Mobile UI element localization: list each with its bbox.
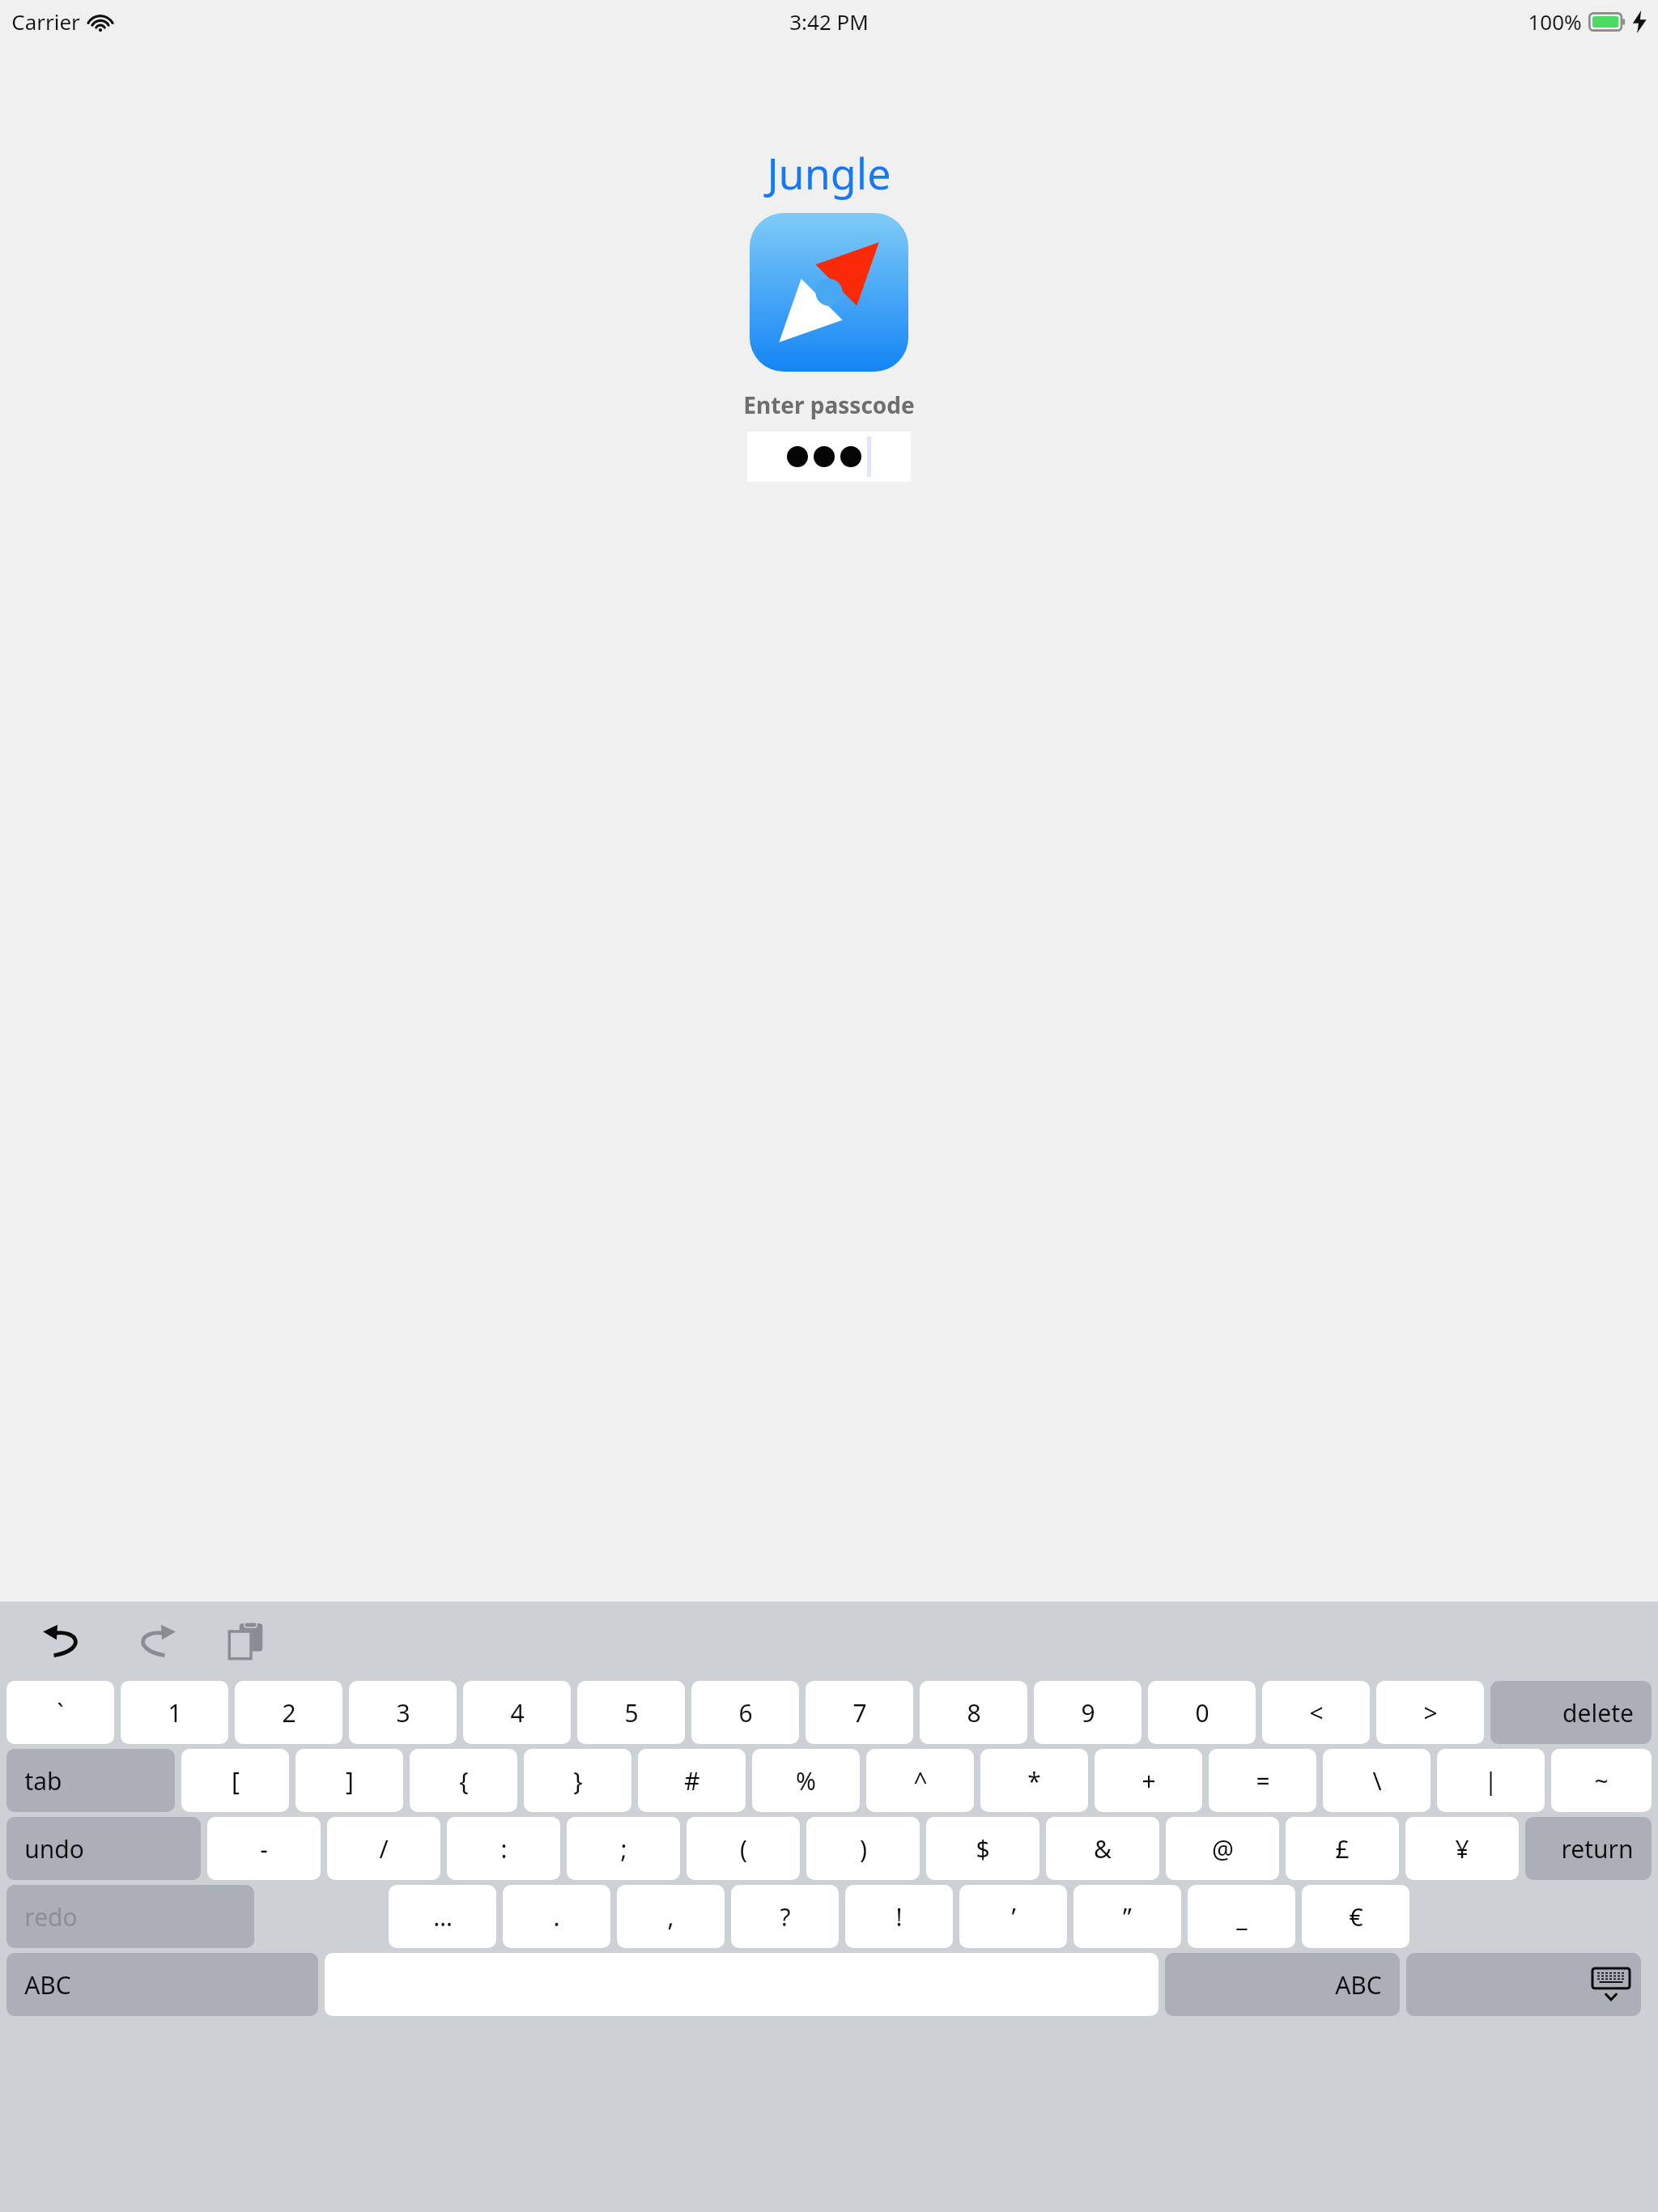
staticText: ^ bbox=[913, 1764, 928, 1797]
button[interactable]: 9 bbox=[1034, 1681, 1141, 1744]
staticText: ’ bbox=[1011, 1900, 1016, 1933]
button[interactable]: , bbox=[617, 1885, 725, 1948]
staticText: ~ bbox=[1594, 1764, 1609, 1797]
button[interactable]: ( bbox=[687, 1817, 800, 1880]
button[interactable]: - bbox=[207, 1817, 321, 1880]
button[interactable]: { bbox=[410, 1749, 517, 1812]
button[interactable]: * bbox=[980, 1749, 1088, 1812]
staticText: ¥ bbox=[1455, 1832, 1469, 1865]
button[interactable]: @ bbox=[1166, 1817, 1279, 1880]
button[interactable]: € bbox=[1302, 1885, 1409, 1948]
button[interactable]: ’ bbox=[959, 1885, 1067, 1948]
button[interactable]: ) bbox=[806, 1817, 920, 1880]
button[interactable]: ¥ bbox=[1405, 1817, 1519, 1880]
button[interactable]: ! bbox=[845, 1885, 953, 1948]
staticText: { bbox=[459, 1764, 469, 1797]
button[interactable]: ] bbox=[295, 1749, 403, 1812]
button[interactable]: 5 bbox=[577, 1681, 685, 1744]
staticText: 8 bbox=[967, 1696, 981, 1729]
other: Hide keyboard bbox=[1406, 1953, 1630, 2016]
button[interactable]: 6 bbox=[691, 1681, 799, 1744]
staticText: 100% bbox=[1528, 7, 1582, 36]
staticText: 4 bbox=[510, 1696, 525, 1729]
staticText: Enter passcode bbox=[743, 389, 915, 420]
button[interactable]: < bbox=[1262, 1681, 1370, 1744]
staticText: + bbox=[1141, 1764, 1156, 1797]
staticText: redo bbox=[24, 1900, 78, 1933]
staticText: return bbox=[1561, 1832, 1634, 1865]
staticText: ! bbox=[895, 1900, 903, 1933]
staticText: tab bbox=[24, 1764, 62, 1797]
button[interactable]: Jungle app icon bbox=[750, 213, 908, 372]
button[interactable]: [ bbox=[181, 1749, 289, 1812]
button[interactable]: delete bbox=[1490, 1681, 1652, 1744]
staticText: ( bbox=[740, 1832, 747, 1865]
button[interactable]: ABC bbox=[1165, 1953, 1400, 2016]
button[interactable]: ; bbox=[567, 1817, 680, 1880]
staticText: @ bbox=[1212, 1832, 1234, 1865]
button[interactable]: … bbox=[389, 1885, 496, 1948]
button[interactable]: / bbox=[327, 1817, 440, 1880]
staticText: # bbox=[684, 1764, 700, 1797]
staticText: 5 bbox=[624, 1696, 639, 1729]
staticText: 6 bbox=[738, 1696, 753, 1729]
button[interactable]: \ bbox=[1323, 1749, 1431, 1812]
button[interactable]: 3 bbox=[349, 1681, 457, 1744]
button[interactable]: redo bbox=[6, 1885, 254, 1948]
button[interactable]: } bbox=[524, 1749, 631, 1812]
button[interactable]: % bbox=[752, 1749, 860, 1812]
button[interactable]: # bbox=[638, 1749, 746, 1812]
button[interactable]: Hide keyboard bbox=[1406, 1953, 1641, 2016]
button[interactable]: undo bbox=[6, 1817, 201, 1880]
staticText: £ bbox=[1335, 1832, 1350, 1865]
staticText: ” bbox=[1123, 1900, 1132, 1933]
button[interactable]: _ bbox=[1188, 1885, 1295, 1948]
staticText: … bbox=[433, 1900, 453, 1933]
staticText: | bbox=[1484, 1764, 1498, 1797]
button[interactable]: ~ bbox=[1551, 1749, 1652, 1812]
staticText: . bbox=[553, 1900, 560, 1933]
button[interactable]: 2 bbox=[235, 1681, 342, 1744]
button[interactable]: ` bbox=[6, 1681, 114, 1744]
staticText: 1 bbox=[168, 1696, 182, 1729]
staticText: 0 bbox=[1195, 1696, 1209, 1729]
button[interactable]: > bbox=[1376, 1681, 1484, 1744]
staticText: ` bbox=[57, 1696, 64, 1729]
staticText: 7 bbox=[852, 1696, 867, 1729]
button[interactable]: ABC bbox=[6, 1953, 318, 2016]
staticText: : bbox=[500, 1832, 508, 1865]
button[interactable]: 8 bbox=[920, 1681, 1027, 1744]
button[interactable]: 7 bbox=[806, 1681, 913, 1744]
button[interactable]: | bbox=[1437, 1749, 1545, 1812]
staticText: < bbox=[1309, 1696, 1324, 1729]
button[interactable]: Redo bbox=[120, 1607, 188, 1675]
button[interactable]: return bbox=[1525, 1817, 1652, 1880]
staticText: [ bbox=[232, 1764, 240, 1797]
button[interactable]: 0 bbox=[1148, 1681, 1256, 1744]
button[interactable]: $ bbox=[926, 1817, 1039, 1880]
button[interactable]: . bbox=[503, 1885, 610, 1948]
button[interactable]: 4 bbox=[463, 1681, 571, 1744]
staticText: undo bbox=[24, 1832, 84, 1865]
button[interactable]: ? bbox=[731, 1885, 839, 1948]
staticText: ABC bbox=[1335, 1968, 1382, 2001]
staticText: ) bbox=[860, 1832, 867, 1865]
button[interactable]: ” bbox=[1073, 1885, 1181, 1948]
button[interactable]: Undo bbox=[31, 1607, 99, 1675]
button[interactable] bbox=[747, 432, 911, 482]
button[interactable]: = bbox=[1209, 1749, 1316, 1812]
button[interactable]: ^ bbox=[866, 1749, 974, 1812]
staticText: } bbox=[573, 1764, 583, 1797]
button[interactable]: Paste bbox=[212, 1607, 280, 1675]
button[interactable]: tab bbox=[6, 1749, 175, 1812]
button[interactable]: & bbox=[1046, 1817, 1159, 1880]
staticText: ? bbox=[780, 1900, 791, 1933]
button[interactable]: 1 bbox=[121, 1681, 228, 1744]
staticText: ABC bbox=[24, 1968, 71, 2001]
button[interactable]: + bbox=[1095, 1749, 1202, 1812]
button[interactable]: £ bbox=[1286, 1817, 1399, 1880]
staticText: & bbox=[1094, 1832, 1112, 1865]
button[interactable]: : bbox=[447, 1817, 560, 1880]
staticText: 3:42 PM bbox=[789, 7, 869, 36]
